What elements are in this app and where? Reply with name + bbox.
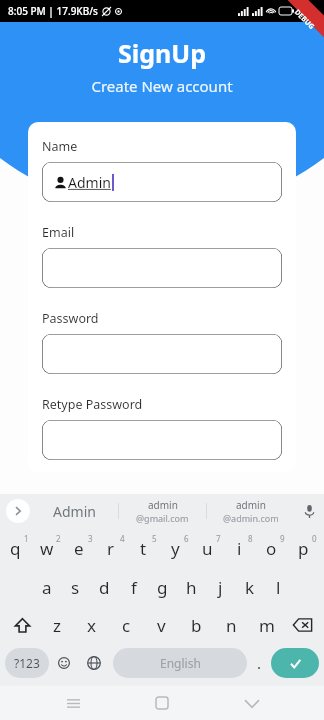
button[interactable]: p bbox=[290, 530, 322, 566]
staticText: 3 bbox=[88, 533, 93, 544]
button[interactable]: Enter bbox=[271, 648, 319, 678]
button[interactable]: Backspace bbox=[284, 608, 320, 642]
button[interactable]: English bbox=[113, 648, 247, 678]
staticText: ?123 bbox=[14, 655, 40, 671]
button[interactable]: n bbox=[214, 608, 249, 642]
staticText: @admin.com bbox=[223, 512, 279, 524]
staticText: j bbox=[218, 576, 223, 599]
staticText: f bbox=[131, 576, 137, 599]
button[interactable]: Admin bbox=[42, 162, 282, 202]
button[interactable]: y bbox=[162, 530, 194, 566]
staticText: 5 bbox=[152, 533, 157, 544]
staticText: admin bbox=[148, 498, 178, 512]
staticText: q bbox=[10, 537, 21, 560]
staticText: x bbox=[87, 614, 96, 637]
button[interactable]: Recent apps bbox=[56, 686, 90, 720]
button[interactable]: Admin bbox=[30, 494, 118, 528]
staticText: g bbox=[157, 576, 168, 599]
staticText: w bbox=[40, 537, 54, 560]
button[interactable]: b bbox=[179, 608, 214, 642]
button[interactable]: z bbox=[40, 608, 74, 642]
staticText: d bbox=[99, 576, 110, 599]
staticText: Admin bbox=[68, 173, 111, 192]
button[interactable] bbox=[42, 420, 282, 460]
button[interactable]: o bbox=[258, 530, 290, 566]
button[interactable]: Back bbox=[235, 686, 269, 720]
staticText: Create New account bbox=[0, 76, 324, 96]
button[interactable]: . bbox=[247, 648, 271, 678]
staticText: c bbox=[122, 614, 131, 637]
button[interactable]: w bbox=[34, 530, 66, 566]
staticText: 6 bbox=[184, 533, 189, 544]
staticText: 9 bbox=[280, 533, 285, 544]
staticText: v bbox=[157, 614, 166, 637]
staticText: DEBUG bbox=[292, 8, 317, 32]
staticText: admin bbox=[236, 498, 266, 512]
staticText: b bbox=[191, 614, 202, 637]
button[interactable] bbox=[42, 248, 282, 288]
staticText: e bbox=[74, 537, 84, 560]
button[interactable]: t bbox=[130, 530, 162, 566]
staticText: Name bbox=[42, 138, 78, 155]
staticText: SignUp bbox=[0, 36, 324, 70]
staticText: 0 bbox=[312, 533, 317, 544]
staticText: t bbox=[140, 537, 147, 560]
button[interactable]: x bbox=[74, 608, 109, 642]
button[interactable]: v bbox=[144, 608, 179, 642]
staticText: n bbox=[226, 614, 237, 637]
staticText: z bbox=[53, 614, 61, 637]
button[interactable]: admin bbox=[119, 494, 206, 528]
button[interactable]: Home bbox=[145, 686, 179, 720]
staticText: Admin bbox=[53, 502, 96, 521]
button[interactable]: Expand suggestions bbox=[6, 499, 30, 523]
button[interactable] bbox=[42, 334, 282, 374]
staticText: 8 bbox=[248, 533, 253, 544]
button[interactable]: c bbox=[109, 608, 144, 642]
staticText: Email bbox=[42, 224, 75, 241]
staticText: u bbox=[202, 537, 213, 560]
button[interactable]: h bbox=[177, 570, 206, 604]
button[interactable]: r bbox=[98, 530, 130, 566]
button[interactable]: q bbox=[2, 530, 34, 566]
staticText: @gmail.com bbox=[136, 512, 189, 524]
button[interactable]: j bbox=[206, 570, 235, 604]
button[interactable]: m bbox=[249, 608, 284, 642]
button[interactable]: u bbox=[194, 530, 226, 566]
button[interactable]: g bbox=[148, 570, 177, 604]
button[interactable]: f bbox=[119, 570, 148, 604]
staticText: l bbox=[276, 576, 281, 599]
staticText: 7 bbox=[216, 533, 221, 544]
staticText: p bbox=[298, 537, 309, 560]
button[interactable]: s bbox=[61, 570, 90, 604]
button[interactable]: Shift bbox=[4, 608, 40, 642]
button[interactable]: ?123 bbox=[5, 648, 49, 678]
staticText: h bbox=[186, 576, 197, 599]
button[interactable]: l bbox=[264, 570, 293, 604]
staticText: r bbox=[107, 537, 115, 560]
button[interactable]: Emoji bbox=[49, 648, 79, 678]
staticText: 2 bbox=[56, 533, 61, 544]
staticText: 1 bbox=[24, 533, 29, 544]
staticText: i bbox=[237, 537, 242, 560]
staticText: English bbox=[160, 655, 201, 671]
staticText: Retype Password bbox=[42, 396, 143, 413]
staticText: 4 bbox=[120, 533, 125, 544]
staticText: . bbox=[257, 653, 262, 673]
button[interactable]: Voice input bbox=[294, 494, 324, 528]
button[interactable]: a bbox=[32, 570, 61, 604]
staticText: o bbox=[266, 537, 277, 560]
button[interactable]: k bbox=[235, 570, 264, 604]
staticText: 8:05 PM | 17.9KB/s bbox=[8, 4, 98, 18]
staticText: k bbox=[245, 576, 255, 599]
staticText: Password bbox=[42, 310, 99, 327]
staticText: m bbox=[259, 614, 275, 637]
button[interactable]: d bbox=[90, 570, 119, 604]
staticText: s bbox=[71, 576, 80, 599]
button[interactable]: e bbox=[66, 530, 98, 566]
button[interactable]: admin bbox=[207, 494, 294, 528]
button[interactable]: i bbox=[226, 530, 258, 566]
button[interactable]: Change language bbox=[79, 648, 109, 678]
staticText: a bbox=[42, 576, 52, 599]
staticText: y bbox=[171, 537, 180, 560]
